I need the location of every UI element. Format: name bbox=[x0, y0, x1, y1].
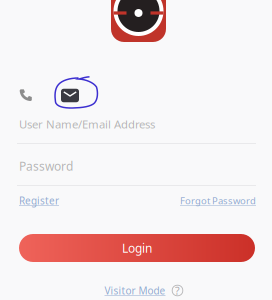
button[interactable]: Visitor Mode bbox=[104, 284, 165, 297]
staticText: Login bbox=[122, 240, 152, 256]
button[interactable]: About visitor mode bbox=[171, 284, 183, 296]
staticText: Visitor Mode bbox=[104, 284, 165, 297]
staticText: ? bbox=[175, 283, 180, 298]
button[interactable]: Sign in with email bbox=[55, 82, 85, 108]
button[interactable]: Login bbox=[19, 234, 255, 262]
staticText: User Name/Email Address bbox=[19, 116, 155, 132]
button[interactable]: Sign in with phone number bbox=[10, 82, 40, 108]
button[interactable]: Forgot Password bbox=[180, 194, 256, 207]
staticText: Password bbox=[19, 158, 73, 174]
staticText: Forgot Password bbox=[180, 194, 256, 207]
staticText: Register bbox=[19, 194, 59, 207]
button[interactable]: Register bbox=[19, 194, 59, 207]
